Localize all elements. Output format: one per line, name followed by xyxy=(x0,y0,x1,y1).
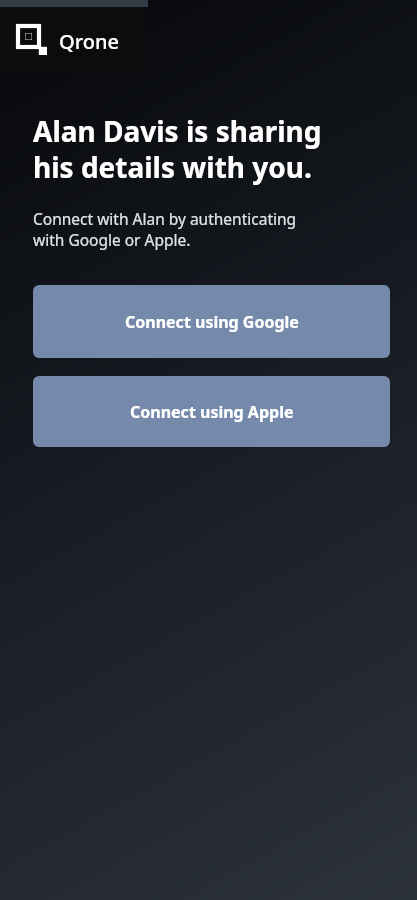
staticText: Connect with Alan by authenticating with… xyxy=(33,208,297,251)
staticText: Qrone xyxy=(59,28,119,55)
other: Qrone logo xyxy=(18,26,48,56)
staticText: Connect using Google xyxy=(125,311,299,333)
staticText: Connect using Apple xyxy=(130,401,294,423)
staticText: Alan Davis is sharing his details with y… xyxy=(33,112,322,186)
button[interactable]: Connect using Google xyxy=(33,285,390,358)
button[interactable]: Qrone logo xyxy=(18,26,119,56)
button[interactable]: Connect using Apple xyxy=(33,376,390,447)
